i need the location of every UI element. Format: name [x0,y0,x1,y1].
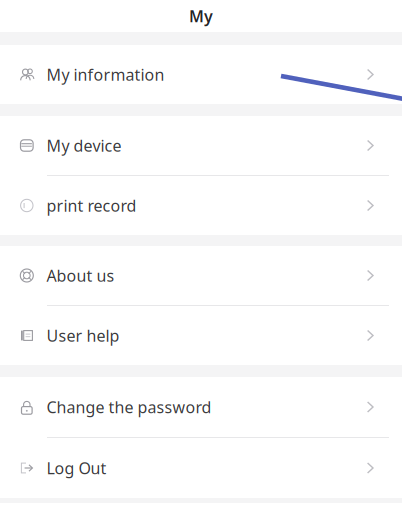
staticText: Log Out [47,457,107,479]
staticText: About us [47,265,115,286]
button[interactable]: About us [0,246,402,305]
button[interactable]: Change the password [0,377,402,437]
button[interactable]: User help [0,306,402,365]
staticText: print record [47,195,137,216]
button[interactable]: print record [0,176,402,235]
button[interactable]: Log Out [0,438,402,498]
staticText: My device [47,135,122,156]
button[interactable]: My device [0,116,402,175]
staticText: Change the password [47,396,212,418]
staticText: User help [47,325,120,346]
staticText: My information [47,64,165,85]
staticText: My [189,5,213,27]
button[interactable]: My information [0,45,402,104]
